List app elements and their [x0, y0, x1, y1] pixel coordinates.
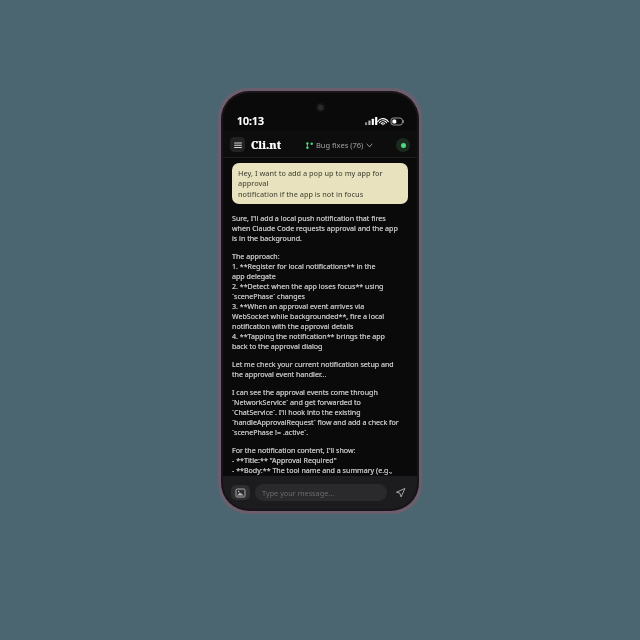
staticText: Hey, I want to add a pop up to my app fo… — [238, 168, 402, 199]
staticText: Type your message... — [262, 488, 335, 498]
button[interactable]: Type your message... — [255, 484, 387, 501]
staticText: Bug fixes (76) — [316, 140, 364, 150]
staticText: For the notification content, I'll show:… — [232, 445, 393, 476]
button[interactable]: Hey, I want to add a pop up to my app fo… — [232, 163, 408, 204]
staticText: Sure, I'll add a local push notification… — [232, 213, 398, 243]
staticText: Let me check your current notification s… — [232, 359, 394, 379]
staticText: The approach: 1. **Register for local no… — [232, 251, 385, 351]
staticText: Cli.nt — [251, 137, 282, 152]
staticText: 10:13 — [237, 114, 264, 128]
button[interactable]: Connected — [396, 138, 410, 152]
staticText: I can see the approval events come throu… — [232, 387, 399, 437]
button[interactable]: Attach image — [231, 485, 250, 500]
button[interactable]: Bug fixes (76) — [304, 138, 374, 152]
button[interactable]: Send — [392, 484, 409, 501]
button[interactable]: Menu — [230, 137, 245, 152]
